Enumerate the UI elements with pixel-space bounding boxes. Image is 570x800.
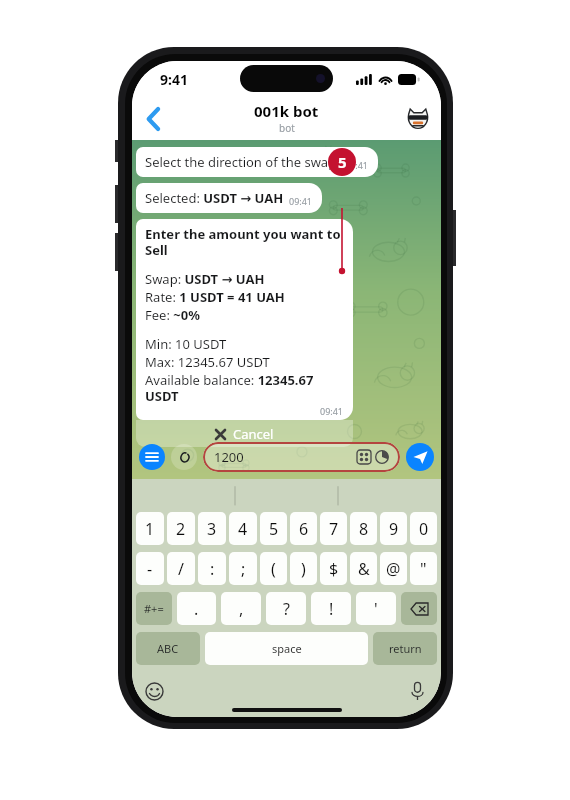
button[interactable]: @ <box>380 552 407 585</box>
button[interactable]: $ <box>320 552 347 585</box>
button[interactable]: ? <box>266 592 306 625</box>
button[interactable]: ( <box>260 552 287 585</box>
button[interactable]: 2 <box>167 512 195 545</box>
staticText: 09:41 <box>345 159 369 171</box>
staticText: 5 <box>338 152 347 172</box>
staticText: 9 <box>389 518 399 540</box>
button[interactable]: return <box>373 632 437 665</box>
staticText: 1200 <box>214 448 244 466</box>
button[interactable]: ; <box>229 552 257 585</box>
button[interactable]: Enter the amount you want to Sell <box>136 219 353 420</box>
staticText: ) <box>301 558 306 580</box>
staticText: ABC <box>157 641 179 656</box>
staticText: 1 <box>145 518 155 540</box>
staticText: ? <box>283 598 290 620</box>
button[interactable]: 7 <box>320 512 347 545</box>
button[interactable]: Attach <box>171 444 197 470</box>
button[interactable]: Cancel <box>136 420 353 447</box>
staticText: 9:41 <box>160 70 188 89</box>
button[interactable]: ' <box>356 592 396 625</box>
staticText: Available balance: 12345.67 USDT <box>145 371 344 405</box>
button[interactable]: / <box>167 552 195 585</box>
button[interactable]: Back <box>136 102 170 136</box>
staticText: 5 <box>269 518 279 540</box>
staticText: Selected: USDT → UAH <box>145 189 284 207</box>
button[interactable]: " <box>410 552 437 585</box>
staticText: bot <box>279 121 295 135</box>
button[interactable]: 1200 <box>203 442 400 472</box>
staticText: 8 <box>359 518 369 540</box>
staticText: return <box>389 641 422 656</box>
button[interactable]: ABC <box>136 632 200 665</box>
staticText: Fee: ~0% <box>145 306 200 324</box>
staticText: - <box>147 558 153 580</box>
staticText: Rate: 1 USDT = 41 UAH <box>145 288 285 306</box>
button[interactable]: 0 <box>410 512 437 545</box>
button[interactable]: , <box>221 592 261 625</box>
staticText: / <box>178 558 184 580</box>
staticText: , <box>239 598 244 620</box>
button[interactable]: . <box>177 592 216 625</box>
button[interactable]: 8 <box>350 512 377 545</box>
button[interactable]: 6 <box>290 512 317 545</box>
button[interactable]: 4 <box>229 512 257 545</box>
button[interactable]: ! <box>311 592 351 625</box>
button[interactable]: & <box>350 552 377 585</box>
button[interactable]: 1 <box>136 512 164 545</box>
staticText: 7 <box>329 518 339 540</box>
staticText: ( <box>271 558 276 580</box>
button[interactable]: Send <box>406 443 434 471</box>
staticText: $ <box>329 558 339 580</box>
staticText: ; <box>241 558 246 580</box>
staticText: : <box>210 558 215 580</box>
button[interactable]: Profile <box>403 104 433 134</box>
staticText: 4 <box>238 518 248 540</box>
button[interactable]: - <box>136 552 164 585</box>
button[interactable]: 3 <box>198 512 226 545</box>
button[interactable]: : <box>198 552 226 585</box>
staticText: . <box>194 598 199 620</box>
staticText: 001k bot <box>254 101 319 121</box>
button[interactable]: Backspace <box>401 592 437 625</box>
staticText: ! <box>329 598 334 620</box>
button[interactable]: Emoji <box>144 681 164 701</box>
button[interactable]: space <box>205 632 368 665</box>
button[interactable]: 5 <box>260 512 287 545</box>
button[interactable]: #+= <box>136 592 172 625</box>
staticText: 2 <box>176 518 186 540</box>
button[interactable]: Dictation <box>407 681 427 701</box>
staticText: 09:41 <box>320 405 344 417</box>
button[interactable]: 9 <box>380 512 407 545</box>
staticText: & <box>358 558 370 580</box>
staticText: Swap: USDT → UAH <box>145 270 265 288</box>
button[interactable]: Selected: USDT → UAH <box>136 183 322 213</box>
staticText: Min: 10 USDT <box>145 335 227 353</box>
button[interactable]: Menu <box>139 444 165 470</box>
staticText: Max: 12345.67 USDT <box>145 353 270 371</box>
staticText: 0 <box>419 518 429 540</box>
staticText: Cancel <box>233 425 274 443</box>
button[interactable]: ) <box>290 552 317 585</box>
staticText: 3 <box>207 518 217 540</box>
staticText: ' <box>374 598 378 620</box>
staticText: " <box>420 558 427 580</box>
staticText: 6 <box>299 518 309 540</box>
staticText: Enter the amount you want to Sell <box>145 225 344 259</box>
staticText: space <box>272 641 302 656</box>
staticText: 09:41 <box>289 195 313 207</box>
staticText: Select the direction of the swap: <box>145 153 340 171</box>
button[interactable]: Select the direction of the swap: <box>136 147 378 177</box>
staticText: #+= <box>144 601 164 616</box>
staticText: @ <box>386 558 401 580</box>
